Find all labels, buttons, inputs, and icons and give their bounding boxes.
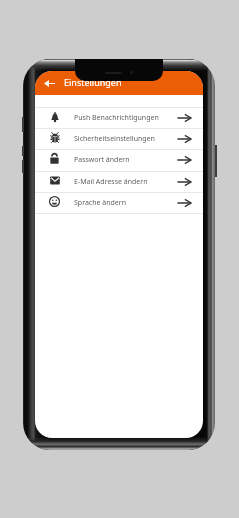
staticText: Sicherheitseinstellungen xyxy=(74,134,155,144)
staticText: Passwort ändern xyxy=(74,155,130,165)
button[interactable]: Sicherheitseinstellungen xyxy=(35,128,203,149)
staticText: Push Benachrichtigungen xyxy=(74,113,159,123)
button[interactable]: E-Mail Adresse ändern xyxy=(35,171,203,192)
staticText: Sprache ändern xyxy=(74,198,127,208)
button[interactable]: Back xyxy=(38,71,60,95)
staticText: Einstellungen xyxy=(64,76,122,88)
staticText: E-Mail Adresse ändern xyxy=(74,177,148,187)
button[interactable]: Push Benachrichtigungen xyxy=(35,107,203,128)
button[interactable]: Passwort ändern xyxy=(35,149,203,170)
button[interactable]: Sprache ändern xyxy=(35,192,203,213)
